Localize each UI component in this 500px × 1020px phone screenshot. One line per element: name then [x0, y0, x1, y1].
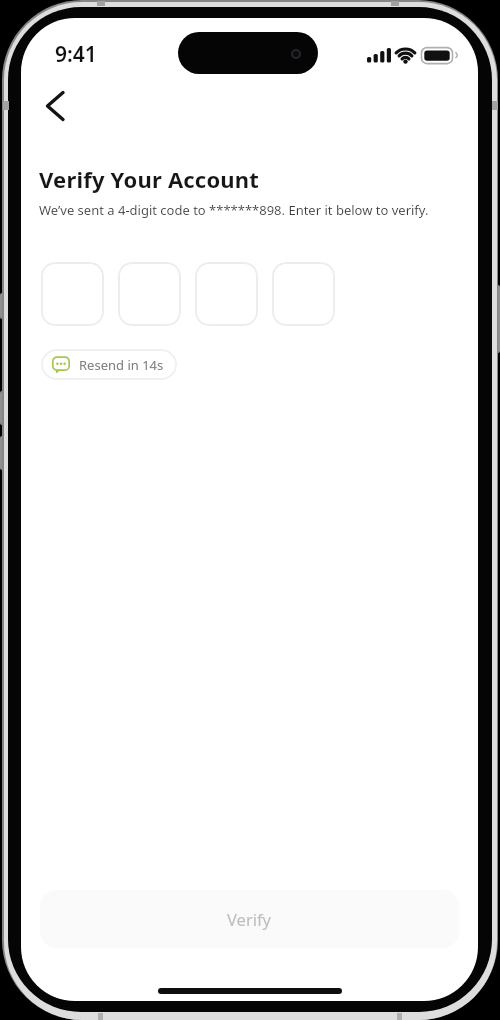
button[interactable]: Verify — [40, 890, 459, 948]
button[interactable] — [41, 262, 104, 326]
button[interactable] — [272, 262, 335, 326]
staticText: Verify — [227, 908, 272, 930]
staticText: We’ve sent a 4-digit code to *******898.… — [39, 201, 429, 219]
button[interactable] — [118, 262, 181, 326]
button[interactable] — [195, 262, 258, 326]
button[interactable] — [36, 84, 76, 128]
staticText: 9:41 — [55, 40, 97, 68]
staticText: Verify Your Account — [39, 164, 260, 194]
staticText: Resend in 14s — [79, 356, 164, 374]
button[interactable]: Resend in 14s — [41, 349, 177, 380]
